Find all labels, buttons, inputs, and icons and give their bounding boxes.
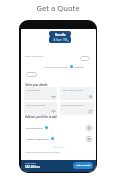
staticText: ESTIMATED [25,162,36,165]
staticText: Comprehensive [25,126,43,129]
staticText: Add-ons you'd like to add [25,115,57,118]
staticText: Enter your details [25,83,48,86]
staticText: Select your plan [25,54,43,57]
staticText: Your Home / Condo [62,89,83,92]
staticText: & Save 15% [53,38,68,42]
staticText: Personal Umbrella [26,104,45,107]
button[interactable] [26,72,37,77]
button[interactable]: Personal Umbrella [24,102,57,115]
staticText: See more [53,145,65,148]
button[interactable]: Roadside Assistance [60,102,94,115]
staticText: Get my quote [76,164,91,167]
staticText: $42.50/mo [25,165,40,169]
staticText: Annual Contract Value [43,65,68,68]
button[interactable]: Comprehensive [25,124,92,131]
staticText: Enabled [74,65,84,68]
button[interactable]: See more [53,145,65,148]
staticText: Bundle [55,33,66,37]
button[interactable] [80,56,90,61]
button[interactable]: Car Coverage [24,87,57,100]
button[interactable]: Get my quote [73,162,93,169]
button[interactable]: Bundle [49,31,71,43]
staticText: Accident forgiveness [25,137,49,140]
staticText: Roadside Assistance [62,104,83,107]
staticText: Terms and Conditions Summary [25,151,60,154]
button[interactable]: Accident forgiveness [25,135,92,142]
staticText: Get a Quote [36,3,80,13]
button[interactable]: Your Home / Condo [60,87,94,100]
button[interactable]: Annual Contract Value [43,65,84,68]
staticText: Car Coverage [26,89,40,92]
